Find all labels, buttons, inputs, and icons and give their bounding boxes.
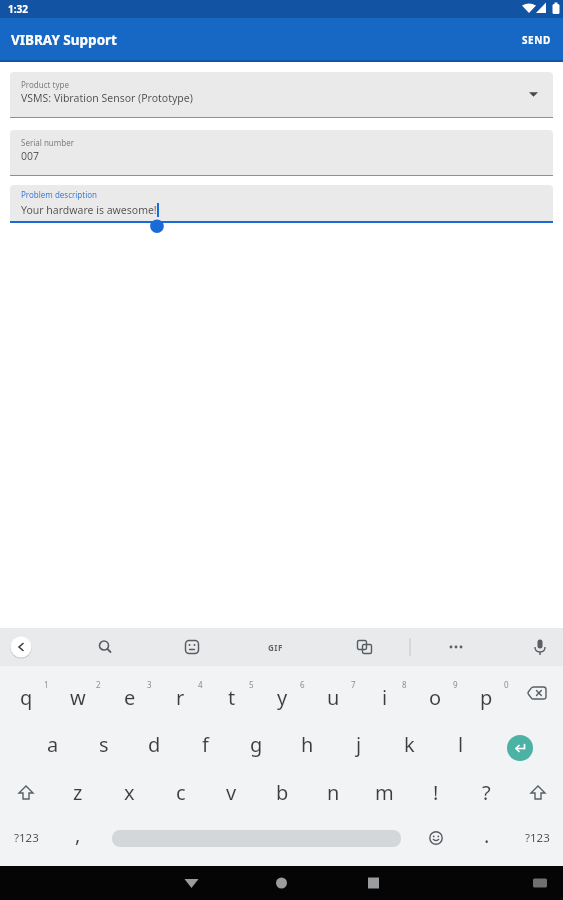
staticText: .	[484, 822, 490, 849]
button[interactable]: n	[308, 766, 359, 816]
button[interactable]	[169, 866, 213, 900]
staticText: q	[20, 684, 33, 711]
button[interactable]: ,	[52, 816, 103, 866]
staticText: r	[176, 684, 185, 711]
staticText: a	[47, 731, 59, 758]
button[interactable]: b	[257, 766, 308, 816]
button[interactable]: g	[231, 716, 282, 766]
button[interactable]: k	[384, 716, 435, 766]
button[interactable]: ?123	[512, 816, 563, 866]
staticText: 1	[44, 679, 49, 690]
staticText: 007	[21, 149, 40, 163]
button[interactable]	[512, 766, 563, 816]
staticText: n	[327, 779, 340, 806]
staticText: l	[458, 731, 464, 758]
staticText: VSMS: Vibration Sensor (Prototype)	[21, 91, 193, 105]
button[interactable]: ?123	[0, 816, 52, 866]
button[interactable]	[512, 666, 563, 716]
staticText: b	[276, 779, 289, 806]
staticText: 9	[453, 679, 458, 690]
staticText: w	[70, 684, 86, 711]
button[interactable]	[259, 866, 303, 900]
button[interactable]: f	[180, 716, 231, 766]
staticText: 2	[96, 679, 101, 690]
staticText: ?123	[525, 830, 550, 846]
staticText: k	[404, 731, 415, 758]
button[interactable]: c	[155, 766, 206, 816]
button[interactable]: q	[0, 666, 52, 716]
button[interactable]	[2, 628, 40, 666]
staticText: s	[99, 731, 109, 758]
button[interactable]: h	[282, 716, 333, 766]
button[interactable]: o	[410, 666, 461, 716]
staticText: ?	[482, 779, 491, 806]
staticText: t	[228, 684, 236, 711]
staticText: GIF	[268, 642, 283, 653]
staticText: !	[433, 779, 439, 806]
button[interactable]	[103, 816, 410, 866]
staticText: Your hardware is awesome!	[21, 203, 157, 217]
staticText: 0	[504, 679, 509, 690]
staticText: SEND	[522, 33, 551, 47]
staticText: c	[176, 779, 186, 806]
button[interactable]: .	[461, 816, 512, 866]
button[interactable]: u	[308, 666, 359, 716]
button[interactable]	[258, 628, 296, 666]
button[interactable]: t	[206, 666, 257, 716]
button[interactable]: i	[359, 666, 410, 716]
staticText: VIBRAY Support	[11, 31, 117, 49]
staticText: i	[382, 684, 388, 711]
button[interactable]: SEND	[510, 18, 563, 62]
button[interactable]	[518, 866, 562, 900]
button[interactable]: d	[129, 716, 180, 766]
button[interactable]	[486, 716, 563, 766]
button[interactable]: w	[52, 666, 104, 716]
button[interactable]: j	[333, 716, 384, 766]
staticText: p	[480, 684, 493, 711]
button[interactable]: Serial number	[10, 130, 553, 176]
staticText: v	[226, 779, 237, 806]
staticText: 1:32	[8, 2, 28, 16]
button[interactable]: !	[410, 766, 461, 816]
button[interactable]: ?	[461, 766, 512, 816]
staticText: 4	[198, 679, 203, 690]
button[interactable]: Problem description	[10, 185, 553, 221]
button[interactable]: s	[78, 716, 129, 766]
staticText: 3	[147, 679, 152, 690]
button[interactable]	[351, 866, 395, 900]
staticText: m	[375, 779, 394, 806]
button[interactable]	[85, 628, 123, 666]
staticText: 7	[351, 679, 356, 690]
staticText: ,	[75, 821, 81, 848]
button[interactable]: Product type	[10, 72, 553, 118]
button[interactable]: r	[155, 666, 206, 716]
button[interactable]	[345, 628, 383, 666]
staticText: 8	[402, 679, 407, 690]
staticText: h	[301, 731, 314, 758]
staticText: u	[327, 684, 340, 711]
staticText: x	[124, 779, 135, 806]
button[interactable]: v	[206, 766, 257, 816]
staticText: Problem description	[21, 189, 98, 200]
button[interactable]: z	[52, 766, 104, 816]
staticText: o	[429, 684, 442, 711]
button[interactable]	[410, 816, 461, 866]
button[interactable]: a	[27, 716, 78, 766]
button[interactable]: m	[359, 766, 410, 816]
button[interactable]: p	[461, 666, 512, 716]
button[interactable]	[521, 628, 559, 666]
button[interactable]: y	[257, 666, 308, 716]
staticText: 6	[300, 679, 305, 690]
button[interactable]	[0, 766, 52, 816]
button[interactable]	[173, 628, 211, 666]
staticText: ?123	[14, 830, 39, 846]
button[interactable]: e	[104, 666, 155, 716]
button[interactable]: l	[435, 716, 486, 766]
staticText: j	[356, 731, 362, 758]
staticText: Product type	[21, 79, 69, 90]
staticText: 5	[249, 679, 254, 690]
button[interactable]: x	[104, 766, 155, 816]
button[interactable]	[437, 628, 475, 666]
staticText: e	[124, 684, 136, 711]
staticText: f	[202, 731, 209, 758]
